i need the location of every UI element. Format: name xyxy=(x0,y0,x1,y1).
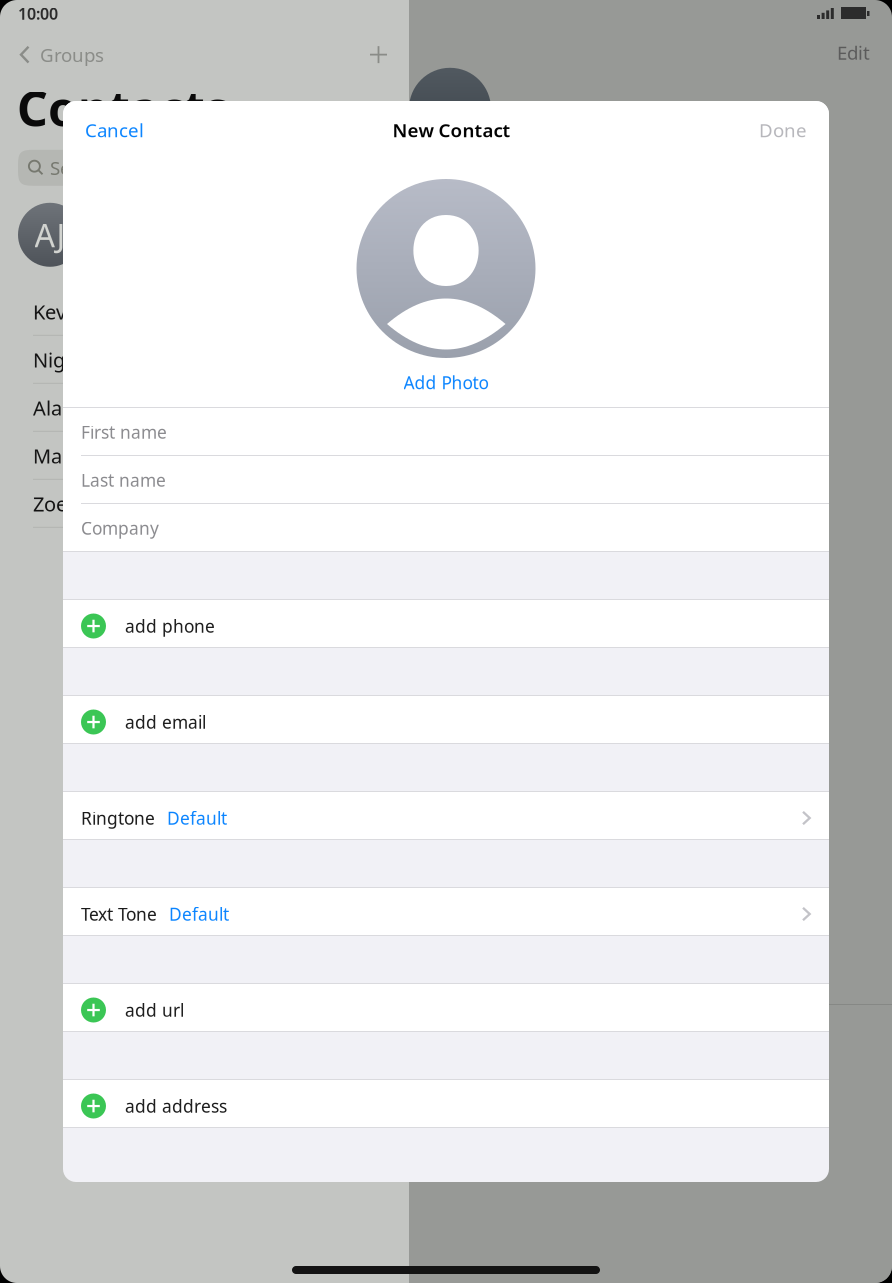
button[interactable]: add phone xyxy=(63,600,829,648)
staticText: Contacts xyxy=(17,76,229,140)
button[interactable]: Ringtone xyxy=(63,792,829,840)
staticText: Edit xyxy=(837,40,870,65)
staticText: Done xyxy=(759,118,807,142)
staticText: add address xyxy=(125,1094,227,1117)
staticText: add email xyxy=(125,710,206,733)
button[interactable]: Add Photo xyxy=(403,358,488,408)
staticText: Add Photo xyxy=(403,371,488,394)
button[interactable]: add email xyxy=(63,696,829,744)
staticText: Last name xyxy=(81,468,166,491)
staticText: Kevin Harris xyxy=(33,298,145,325)
staticText: Default xyxy=(167,806,227,829)
staticText: Ringtone xyxy=(81,806,155,829)
staticText: Default xyxy=(169,902,229,925)
staticText: Groups xyxy=(40,42,104,67)
staticText: Zoe Carter xyxy=(33,490,130,517)
staticText: Nigel Fenwick xyxy=(33,346,161,373)
staticText: New Contact xyxy=(392,118,510,142)
staticText: Text Tone xyxy=(81,902,157,925)
staticText: Cancel xyxy=(85,118,144,142)
staticText: 10:00 xyxy=(18,3,58,24)
button[interactable]: Done xyxy=(759,118,807,142)
staticText: add phone xyxy=(125,614,215,637)
staticText: Search xyxy=(50,155,109,180)
staticText: Company xyxy=(81,516,159,539)
staticText: add url xyxy=(125,998,184,1021)
button[interactable]: Cancel xyxy=(85,118,144,142)
button[interactable]: add address xyxy=(63,1080,829,1128)
button[interactable]: Text Tone xyxy=(63,888,829,936)
staticText: Marcus Webb xyxy=(33,442,160,469)
staticText: First name xyxy=(81,420,167,443)
staticText: AJ xyxy=(34,213,65,256)
staticText: Alan Turing xyxy=(33,394,138,421)
button[interactable]: Edit xyxy=(837,40,870,65)
button[interactable]: add url xyxy=(63,984,829,1032)
